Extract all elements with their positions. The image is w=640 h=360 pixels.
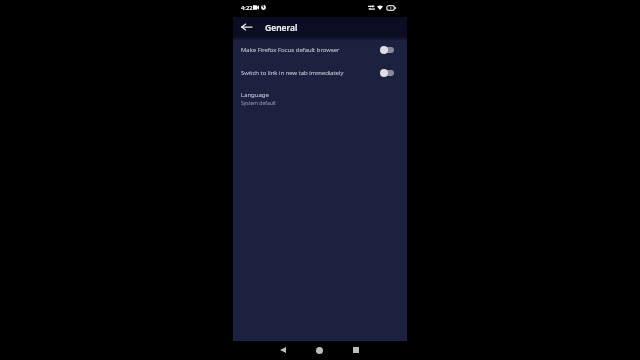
button[interactable]: Make Firefox Focus default browser [380, 46, 394, 54]
staticText: Language [241, 90, 269, 98]
button[interactable]: Home [310, 341, 328, 359]
button[interactable]: Switch to link in new tab immediately [380, 69, 394, 77]
staticText: Make Firefox Focus default browser [241, 45, 380, 53]
staticText: 4:22 [241, 4, 253, 12]
staticText: Switch to link in new tab immediately [241, 68, 380, 76]
button[interactable]: Back [274, 341, 292, 359]
button[interactable]: Switch to link in new tab immediately [233, 60, 407, 83]
button[interactable]: Language [233, 83, 407, 112]
button[interactable]: Navigate up [236, 18, 256, 38]
button[interactable]: Make Firefox Focus default browser [233, 37, 407, 60]
staticText: System default [241, 99, 276, 106]
button[interactable]: Recent apps [347, 341, 365, 359]
staticText: General [265, 22, 298, 34]
